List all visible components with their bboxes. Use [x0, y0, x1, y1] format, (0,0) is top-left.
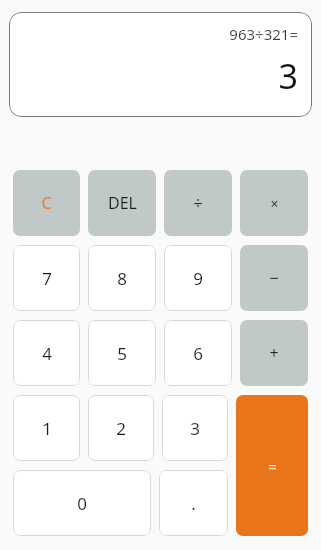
staticText: 3 [278, 53, 298, 99]
button[interactable]: × [240, 170, 308, 236]
button[interactable]: 6 [164, 320, 232, 386]
staticText: − [269, 267, 279, 289]
button[interactable]: 3 [162, 395, 228, 461]
button[interactable]: 2 [88, 395, 154, 461]
button[interactable]: 5 [88, 320, 156, 386]
staticText: 9 [193, 267, 203, 290]
button[interactable]: + [240, 320, 308, 386]
staticText: 4 [42, 342, 52, 365]
button[interactable]: 0 [13, 470, 151, 536]
button[interactable]: C [13, 170, 80, 236]
staticText: 7 [42, 267, 52, 290]
button[interactable]: ÷ [164, 170, 232, 236]
button[interactable]: 4 [13, 320, 80, 386]
staticText: . [191, 492, 196, 515]
staticText: + [269, 342, 279, 364]
staticText: 2 [116, 417, 126, 440]
staticText: 5 [117, 342, 127, 365]
staticText: 963÷321= [229, 24, 298, 44]
button[interactable]: − [240, 245, 308, 311]
staticText: × [270, 194, 279, 213]
button[interactable]: 8 [88, 245, 156, 311]
button[interactable]: 963÷321= [9, 12, 312, 117]
button[interactable]: 1 [13, 395, 80, 461]
button[interactable]: DEL [88, 170, 156, 236]
button[interactable]: . [159, 470, 228, 536]
staticText: ÷ [193, 192, 203, 214]
staticText: 3 [190, 417, 200, 440]
button[interactable]: Equals [236, 395, 308, 536]
staticText: 6 [193, 342, 203, 365]
staticText: 8 [117, 267, 127, 290]
button[interactable]: 7 [13, 245, 80, 311]
staticText: C [41, 192, 52, 214]
staticText: 0 [77, 492, 87, 515]
staticText: = [268, 456, 277, 476]
staticText: 1 [42, 417, 52, 440]
staticText: DEL [108, 192, 137, 214]
button[interactable]: 9 [164, 245, 232, 311]
